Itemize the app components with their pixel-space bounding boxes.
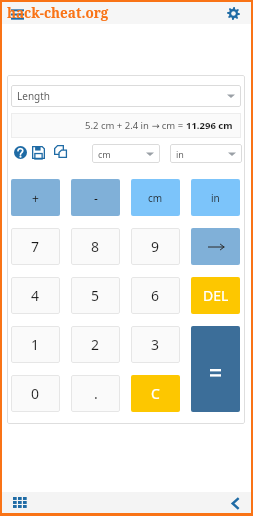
staticText: . — [94, 384, 98, 403]
button[interactable]: cm — [131, 179, 180, 216]
button[interactable]: . — [71, 375, 120, 412]
button[interactable]: in — [191, 179, 240, 216]
button[interactable]: 9 — [131, 228, 180, 265]
staticText: 1 — [31, 335, 40, 354]
button[interactable]: Swap units — [191, 228, 240, 265]
button[interactable]: 8 — [71, 228, 120, 265]
button[interactable]: cm — [92, 144, 160, 163]
button[interactable]: Save — [30, 144, 46, 160]
button[interactable]: Length — [11, 85, 241, 107]
button[interactable]: in — [170, 144, 242, 163]
staticText: cm — [98, 148, 111, 160]
staticText: C — [151, 384, 160, 403]
button[interactable]: 4 — [11, 277, 60, 314]
button[interactable]: 0 — [11, 375, 60, 412]
staticText: 9 — [151, 237, 160, 256]
staticText: 7 — [31, 237, 40, 256]
staticText: 5 — [91, 286, 100, 305]
button[interactable]: 2 — [71, 326, 120, 363]
button[interactable]: Settings — [223, 3, 243, 23]
staticText: 3 — [151, 335, 160, 354]
staticText: in — [176, 148, 184, 160]
button[interactable]: 5 — [71, 277, 120, 314]
staticText: hack-cheat.org — [7, 4, 109, 22]
button[interactable]: 3 — [131, 326, 180, 363]
button[interactable]: Menu — [7, 3, 27, 23]
button[interactable]: + — [11, 179, 60, 216]
button[interactable]: Help — [12, 144, 28, 160]
button[interactable]: DEL — [191, 277, 240, 314]
button[interactable]: 7 — [11, 228, 60, 265]
button[interactable]: Back — [227, 495, 243, 511]
button[interactable]: 6 — [131, 277, 180, 314]
staticText: cm — [148, 191, 163, 205]
staticText: 11.296 cm — [186, 119, 233, 132]
staticText: 2 — [91, 335, 100, 354]
staticText: 6 — [151, 286, 160, 305]
staticText: - — [94, 190, 98, 206]
staticText: DEL — [203, 286, 229, 305]
button[interactable]: C — [131, 375, 180, 412]
staticText: 4 — [31, 286, 40, 305]
staticText: 8 — [91, 237, 100, 256]
staticText: + — [32, 190, 39, 206]
staticText: in — [211, 191, 220, 205]
button[interactable]: 1 — [11, 326, 60, 363]
button[interactable]: Copy — [53, 144, 69, 160]
button[interactable]: Apps — [11, 494, 29, 512]
staticText: 5.2 cm + 2.4 in → cm = — [85, 119, 186, 132]
button[interactable]: - — [71, 179, 120, 216]
button[interactable] — [191, 326, 240, 412]
staticText: Length — [17, 89, 50, 103]
staticText: 0 — [31, 384, 40, 403]
